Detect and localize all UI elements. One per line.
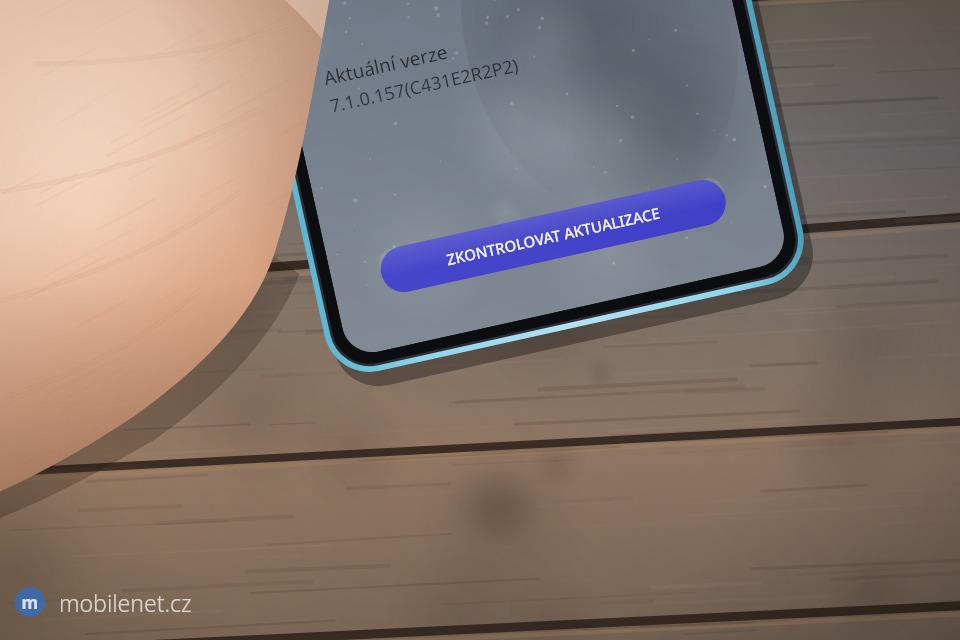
button[interactable]: Zkontrolovat aktualizace xyxy=(0,0,270,95)
